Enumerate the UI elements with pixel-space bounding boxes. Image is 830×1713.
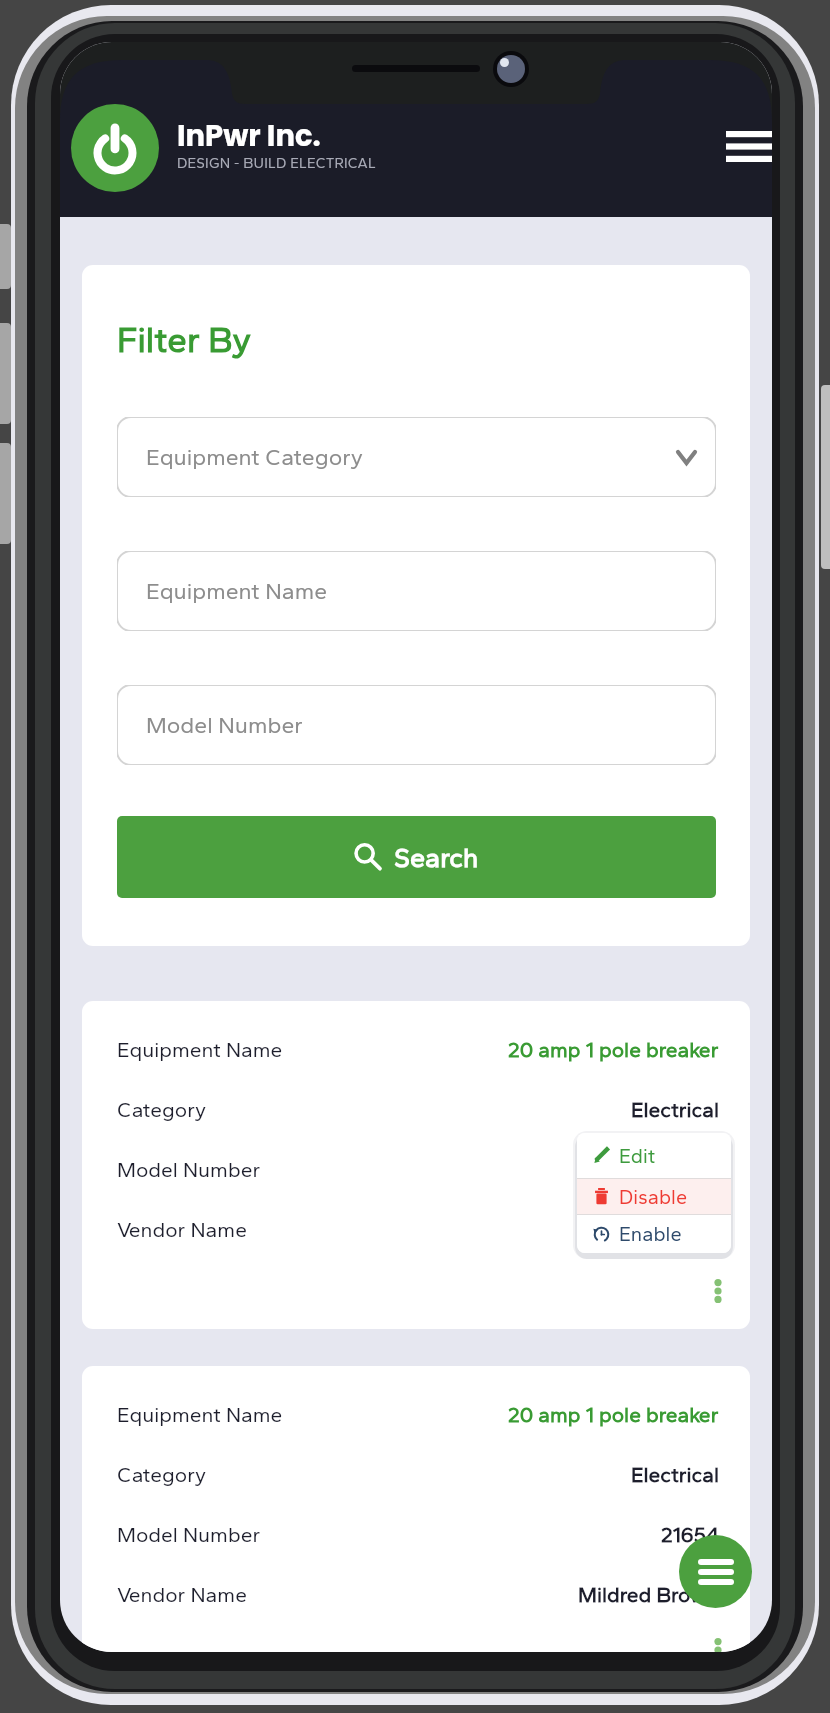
button[interactable]: Disable <box>577 1179 731 1214</box>
staticText: Equipment Name <box>146 577 328 605</box>
staticText: Edit <box>619 1144 656 1168</box>
staticText: Model Number <box>117 1522 261 1547</box>
staticText: 21654 <box>661 1522 719 1547</box>
staticText: Model Number <box>117 1157 261 1182</box>
staticText: Model Number <box>146 711 303 739</box>
staticText: Electrical <box>631 1097 719 1122</box>
button[interactable]: Search <box>117 816 716 898</box>
button[interactable]: Add equipment <box>679 1535 752 1608</box>
staticText: InPwr Inc. <box>177 116 321 157</box>
button[interactable]: Enable <box>577 1215 731 1253</box>
staticText: Equipment Name <box>117 1037 283 1062</box>
button[interactable]: Equipment Category <box>117 417 716 497</box>
staticText: Search <box>394 841 479 873</box>
staticText: Vendor Name <box>117 1217 247 1242</box>
button[interactable]: More options <box>700 1638 736 1652</box>
button[interactable]: Equipment Name <box>117 551 716 631</box>
button[interactable]: Edit <box>577 1133 731 1178</box>
staticText: Category <box>117 1097 207 1122</box>
button[interactable]: More options <box>700 1273 736 1309</box>
staticText: Equipment Name <box>117 1402 283 1427</box>
staticText: Enable <box>619 1222 682 1246</box>
button[interactable]: Model Number <box>117 685 716 765</box>
button[interactable]: Open navigation menu <box>711 109 772 185</box>
staticText: Mildred Brown <box>578 1582 719 1607</box>
staticText: DESIGN - BUILD ELECTRICAL <box>177 154 376 171</box>
staticText: Filter By <box>117 319 252 361</box>
staticText: Equipment Category <box>146 443 363 471</box>
staticText: Disable <box>619 1185 688 1209</box>
staticText: Category <box>117 1462 207 1487</box>
staticText: Vendor Name <box>117 1582 247 1607</box>
staticText: 20 amp 1 pole breaker <box>508 1037 719 1062</box>
staticText: Electrical <box>631 1462 719 1487</box>
staticText: 20 amp 1 pole breaker <box>508 1402 719 1427</box>
